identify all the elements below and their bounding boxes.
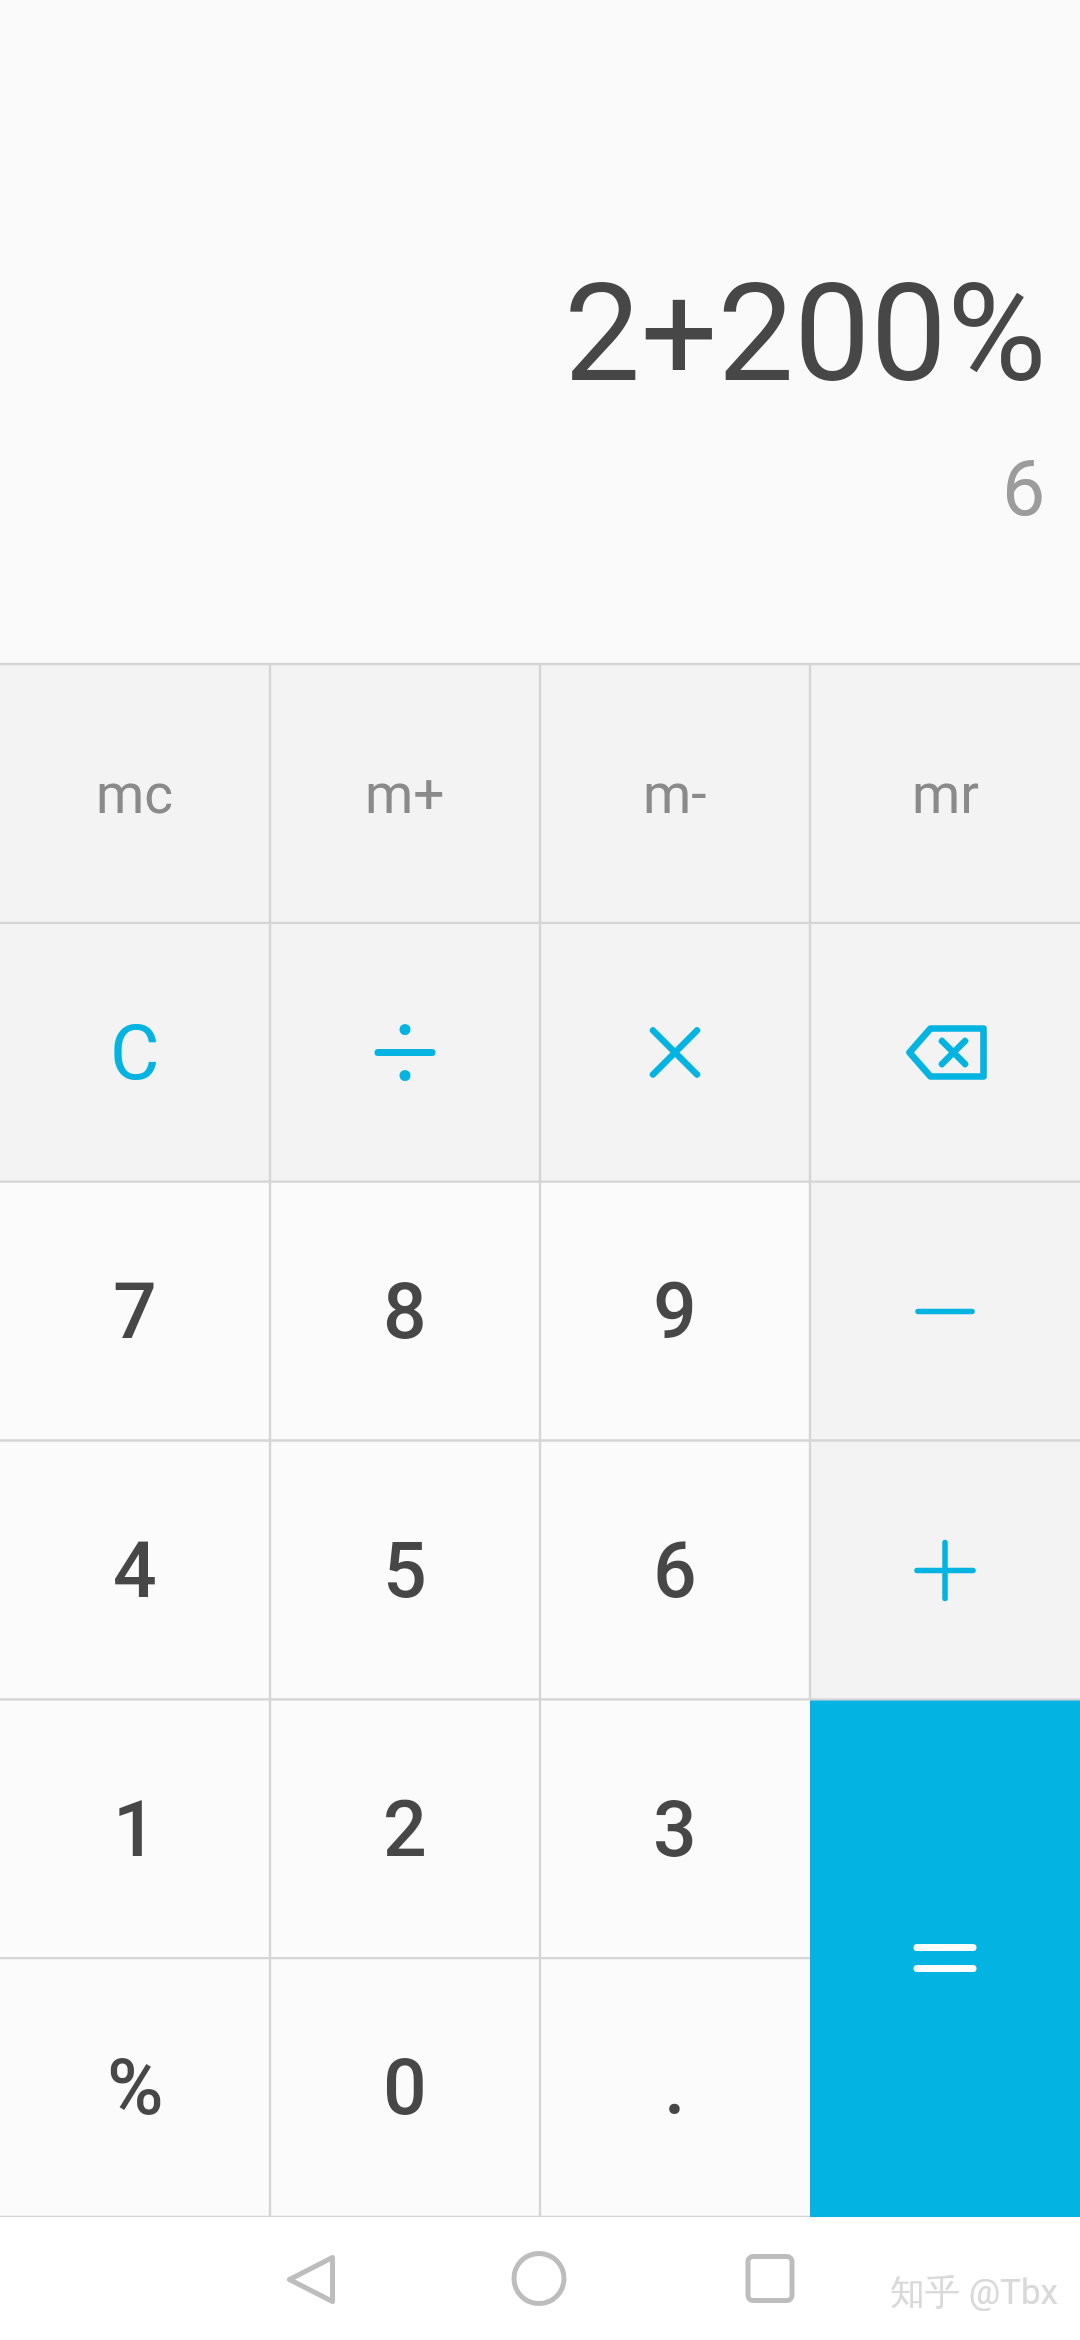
staticText: 3 [653,1785,697,1875]
button[interactable]: 0 [270,1959,540,2217]
button[interactable]: mc [0,664,270,923]
staticText: 6 [653,1526,697,1616]
button[interactable]: Divide [270,923,540,1182]
staticText: 8 [383,1267,427,1357]
button[interactable]: . [540,1959,810,2217]
button[interactable]: 6 [540,1441,810,1700]
staticText: 0 [383,2043,427,2133]
staticText: 2+200% [564,254,1047,413]
button[interactable]: Plus [810,1441,1080,1700]
staticText: 7 [113,1267,157,1357]
button[interactable]: 3 [540,1700,810,1959]
button[interactable]: 8 [270,1182,540,1441]
button[interactable]: m- [540,664,810,923]
button[interactable]: Home [484,2217,594,2340]
button[interactable]: 9 [540,1182,810,1441]
staticText: 4 [113,1526,157,1616]
staticText: 9 [653,1267,697,1357]
staticText: m+ [365,762,445,826]
staticText: 知乎 @Tbx [890,2270,1058,2314]
button[interactable]: m+ [270,664,540,923]
button[interactable]: Recent apps [715,2217,825,2340]
staticText: 2 [383,1785,427,1875]
staticText: 1 [113,1785,157,1875]
staticText: 6 [1002,444,1046,534]
button[interactable]: Back [255,2217,365,2340]
button[interactable]: Multiply [540,923,810,1182]
staticText: 5 [383,1526,427,1616]
button[interactable]: Equals [810,1699,1080,2217]
staticText: m- [643,762,707,826]
button[interactable]: Backspace [810,923,1080,1182]
button[interactable]: 2 [270,1700,540,1959]
staticText: mr [912,762,979,826]
button[interactable]: mr [810,664,1080,923]
button[interactable]: 1 [0,1700,270,1959]
button[interactable]: C [0,923,270,1182]
button[interactable]: 4 [0,1441,270,1700]
button[interactable]: % [0,1959,270,2217]
staticText: % [107,2043,164,2133]
staticText: C [110,1008,160,1097]
staticText: mc [96,762,174,826]
button[interactable]: 5 [270,1441,540,1700]
staticText: . [664,2043,686,2133]
button[interactable]: 7 [0,1182,270,1441]
button[interactable]: Minus [810,1182,1080,1441]
